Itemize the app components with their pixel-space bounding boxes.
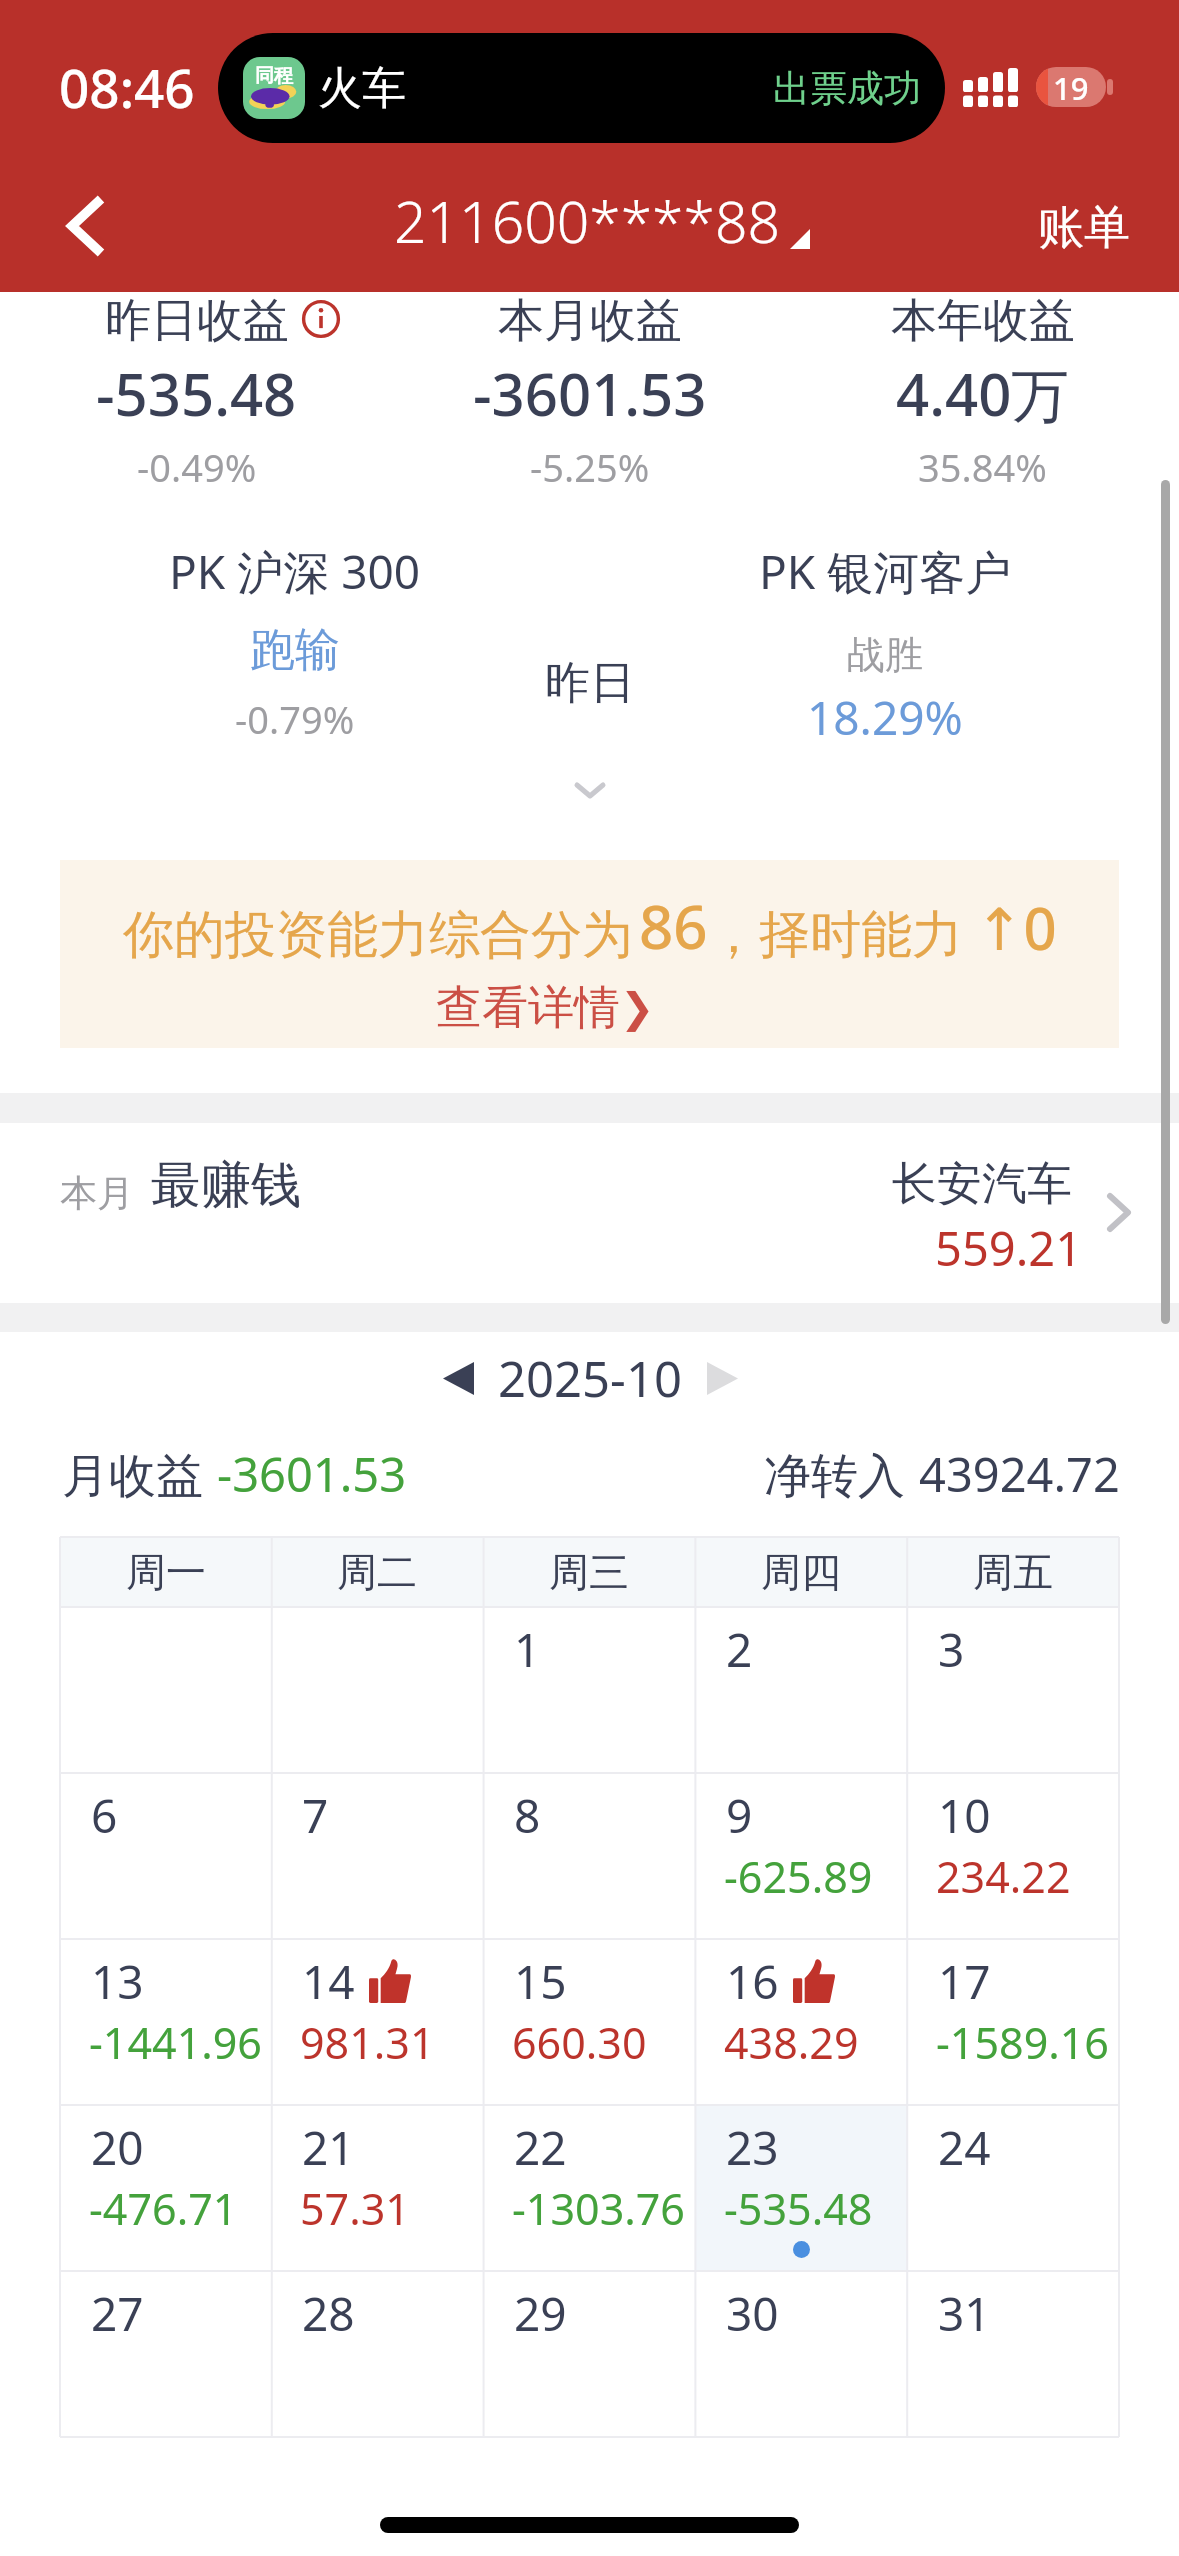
button[interactable]: Back	[43, 183, 129, 269]
button[interactable]: 30	[695, 2271, 907, 2437]
button[interactable]: 14	[271, 1939, 483, 2105]
staticText: 跑输	[250, 622, 340, 679]
button[interactable]: 账单	[1038, 199, 1130, 257]
staticText: -476.71	[89, 2179, 238, 2238]
staticText: 31	[938, 2282, 991, 2345]
button[interactable]: 7	[271, 1773, 483, 1939]
staticText: 57.31	[300, 2179, 410, 2238]
staticText: 43924.72	[919, 1442, 1120, 1506]
staticText: 本年收益	[891, 292, 1075, 350]
staticText: 981.31	[300, 2013, 435, 2072]
staticText: 19	[1053, 67, 1089, 107]
staticText: 9	[726, 1784, 753, 1847]
staticText: 35.84%	[918, 441, 1047, 493]
staticText: 211600****88	[394, 182, 781, 260]
staticText: 28	[302, 2282, 355, 2345]
staticText: 22	[514, 2116, 567, 2179]
staticText: 438.29	[724, 2013, 859, 2072]
staticText: 战胜	[847, 631, 923, 679]
staticText: 23	[726, 2116, 779, 2179]
staticText: 周一	[126, 1547, 206, 1597]
button[interactable]: Next month	[687, 1343, 757, 1413]
staticText: 08:46	[59, 51, 195, 123]
button[interactable]: 6	[60, 1773, 271, 1939]
button[interactable]: 3	[907, 1607, 1119, 1773]
staticText: 6	[91, 1784, 118, 1847]
staticText: 27	[91, 2282, 144, 2345]
button[interactable]: 9	[695, 1773, 907, 1939]
staticText: 18.29%	[807, 686, 963, 749]
button[interactable]: Info	[299, 297, 343, 341]
staticText: 2	[726, 1618, 753, 1681]
button[interactable]: 20	[60, 2105, 271, 2271]
button[interactable]: 8	[483, 1773, 695, 1939]
staticText: PK 银河客户	[759, 540, 1012, 603]
staticText: 86	[639, 885, 708, 967]
staticText: 30	[726, 2282, 779, 2345]
staticText: 同程	[255, 64, 293, 88]
staticText: 昨日收益	[105, 292, 289, 350]
staticText: ❯	[620, 984, 655, 1032]
staticText: 3	[938, 1618, 965, 1681]
button[interactable]: 24	[907, 2105, 1119, 2271]
staticText: 周五	[973, 1547, 1053, 1597]
staticText: 查看详情	[436, 979, 620, 1037]
button[interactable]: 13	[60, 1939, 271, 2105]
staticText: 月收益	[62, 1447, 203, 1506]
staticText: 出票成功	[773, 65, 921, 112]
button[interactable]: 21	[271, 2105, 483, 2271]
button[interactable]: 16	[695, 1939, 907, 2105]
staticText: 周四	[761, 1547, 841, 1597]
staticText: 24	[938, 2116, 991, 2179]
staticText: ，择时能力	[708, 903, 963, 967]
button[interactable]: 15	[483, 1939, 695, 2105]
button[interactable]: 29	[483, 2271, 695, 2437]
button[interactable]: 28	[271, 2271, 483, 2437]
button[interactable]: 17	[907, 1939, 1119, 2105]
staticText: -5.25%	[530, 441, 650, 493]
button[interactable]: 31	[907, 2271, 1119, 2437]
staticText: 559.21	[935, 1216, 1083, 1280]
staticText: 本月收益	[498, 292, 682, 350]
staticText: 账单	[1038, 199, 1130, 257]
staticText: -3601.53	[217, 1442, 407, 1506]
staticText: 1	[514, 1618, 541, 1681]
button[interactable]: Previous month	[423, 1343, 493, 1413]
staticText: 7	[302, 1784, 329, 1847]
staticText: -535.48	[724, 2179, 873, 2238]
staticText: PK 沪深 300	[169, 540, 421, 603]
staticText: 13	[91, 1950, 144, 2013]
staticText: 周二	[337, 1547, 417, 1597]
staticText: 14	[302, 1950, 355, 2013]
staticText: 本月	[60, 1170, 134, 1217]
staticText: 你的投资能力综合分为	[123, 903, 633, 967]
button[interactable]: 23	[695, 2105, 907, 2271]
staticText: ↑0	[975, 888, 1057, 967]
staticText: -1589.16	[936, 2013, 1109, 2072]
button[interactable]: 你的投资能力综合分为	[60, 860, 1119, 1048]
staticText: 长安汽车	[892, 1156, 1072, 1213]
staticText: -1441.96	[89, 2013, 262, 2072]
button[interactable]: 1	[483, 1607, 695, 1773]
staticText: 16	[726, 1950, 779, 2013]
button[interactable]: 22	[483, 2105, 695, 2271]
button[interactable]: 27	[60, 2271, 271, 2437]
staticText: 4.40万	[896, 354, 1070, 433]
staticText: 660.30	[512, 2013, 647, 2072]
staticText: -535.48	[96, 354, 297, 433]
staticText: 昨日	[545, 655, 635, 712]
button[interactable]: 211600****88	[394, 182, 801, 260]
button[interactable]: 本月	[0, 1123, 1179, 1303]
button[interactable]: Expand	[545, 766, 635, 814]
staticText: 8	[514, 1784, 541, 1847]
staticText: -0.49%	[137, 441, 257, 493]
button[interactable]: 10	[907, 1773, 1119, 1939]
staticText: 21	[302, 2116, 355, 2179]
staticText: 15	[514, 1950, 567, 2013]
staticText: -0.79%	[235, 693, 355, 745]
button[interactable]: 2	[695, 1607, 907, 1773]
staticText: 17	[938, 1950, 991, 2013]
staticText: 29	[514, 2282, 567, 2345]
